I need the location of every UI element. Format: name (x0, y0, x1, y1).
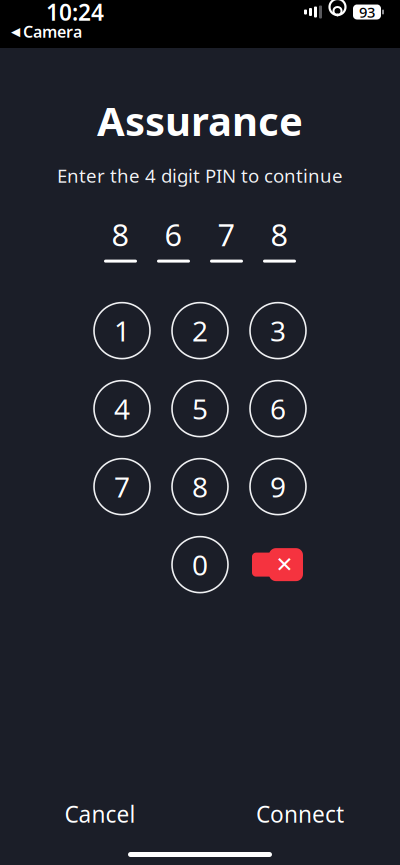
button[interactable]: 1 (94, 303, 150, 359)
button[interactable]: Connect (200, 792, 400, 836)
staticText: 0 (192, 546, 208, 583)
staticText: Cancel (64, 799, 135, 829)
button[interactable]: 2 (172, 303, 228, 359)
staticText: Enter the 4 digit PIN to continue (57, 163, 343, 188)
staticText: ◀ (11, 25, 20, 38)
staticText: 7 (217, 214, 235, 255)
button[interactable]: 3 (250, 303, 306, 359)
staticText: 4 (114, 390, 130, 427)
staticText: 2 (192, 312, 208, 349)
button[interactable]: 4 (94, 381, 150, 437)
staticText: Assurance (97, 94, 303, 147)
staticText: 7 (114, 468, 130, 505)
staticText: 8 (270, 214, 288, 255)
button[interactable]: Delete (250, 537, 306, 593)
staticText: 93 (359, 2, 375, 22)
button[interactable]: 9 (250, 459, 306, 515)
staticText: 8 (111, 214, 129, 255)
staticText: 1 (114, 312, 130, 349)
button[interactable]: Cancel (0, 792, 200, 836)
staticText: Camera (23, 21, 82, 42)
button[interactable]: 7 (94, 459, 150, 515)
button[interactable]: 5 (172, 381, 228, 437)
staticText: 3 (270, 312, 286, 349)
staticText: ✕ (275, 552, 293, 577)
staticText: 9 (270, 468, 286, 505)
button[interactable]: 8 (172, 459, 228, 515)
button[interactable]: 0 (172, 537, 228, 593)
staticText: 6 (164, 214, 182, 255)
staticText: 10:24 (46, 0, 104, 27)
staticText: 5 (192, 390, 208, 427)
button[interactable]: 6 (250, 381, 306, 437)
staticText: Connect (256, 799, 344, 829)
staticText: 6 (270, 390, 286, 427)
staticText: 8 (192, 468, 208, 505)
